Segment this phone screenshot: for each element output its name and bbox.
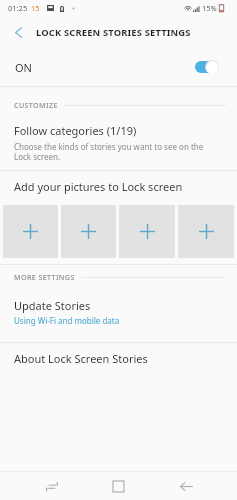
staticText: MORE SETTINGS: [14, 272, 75, 282]
button[interactable]: ON: [0, 48, 237, 86]
button[interactable]: Add picture: [178, 205, 234, 258]
staticText: 15%: [202, 3, 217, 13]
button[interactable]: Follow categories (1/19): [0, 112, 237, 170]
button[interactable]: Add picture: [119, 205, 175, 258]
button[interactable]: Add picture: [3, 205, 58, 258]
button[interactable]: Home: [104, 472, 133, 500]
button[interactable]: Back: [172, 472, 201, 500]
staticText: Update Stories: [14, 298, 91, 313]
staticText: Add your pictures to Lock screen: [14, 179, 183, 194]
staticText: About Lock Screen Stories: [14, 351, 148, 366]
staticText: Using Wi-Fi and mobile data: [14, 315, 120, 326]
button[interactable]: Navigate up: [0, 16, 36, 48]
button[interactable]: Add your pictures to Lock screen: [0, 171, 237, 205]
staticText: CUSTOMIZE: [14, 100, 58, 110]
button[interactable]: Add picture: [61, 205, 116, 258]
staticText: 01:25: [8, 3, 28, 13]
button[interactable]: Update Stories: [0, 287, 237, 342]
staticText: ON: [15, 60, 32, 75]
staticText: Follow categories (1/19): [14, 123, 137, 138]
staticText: 15: [31, 3, 40, 13]
staticText: Choose the kinds of stories you want to …: [14, 141, 204, 162]
staticText: LOCK SCREEN STORIES SETTINGS: [36, 26, 191, 39]
button[interactable]: About Lock Screen Stories: [0, 343, 237, 373]
button[interactable]: Recent apps: [37, 472, 66, 500]
